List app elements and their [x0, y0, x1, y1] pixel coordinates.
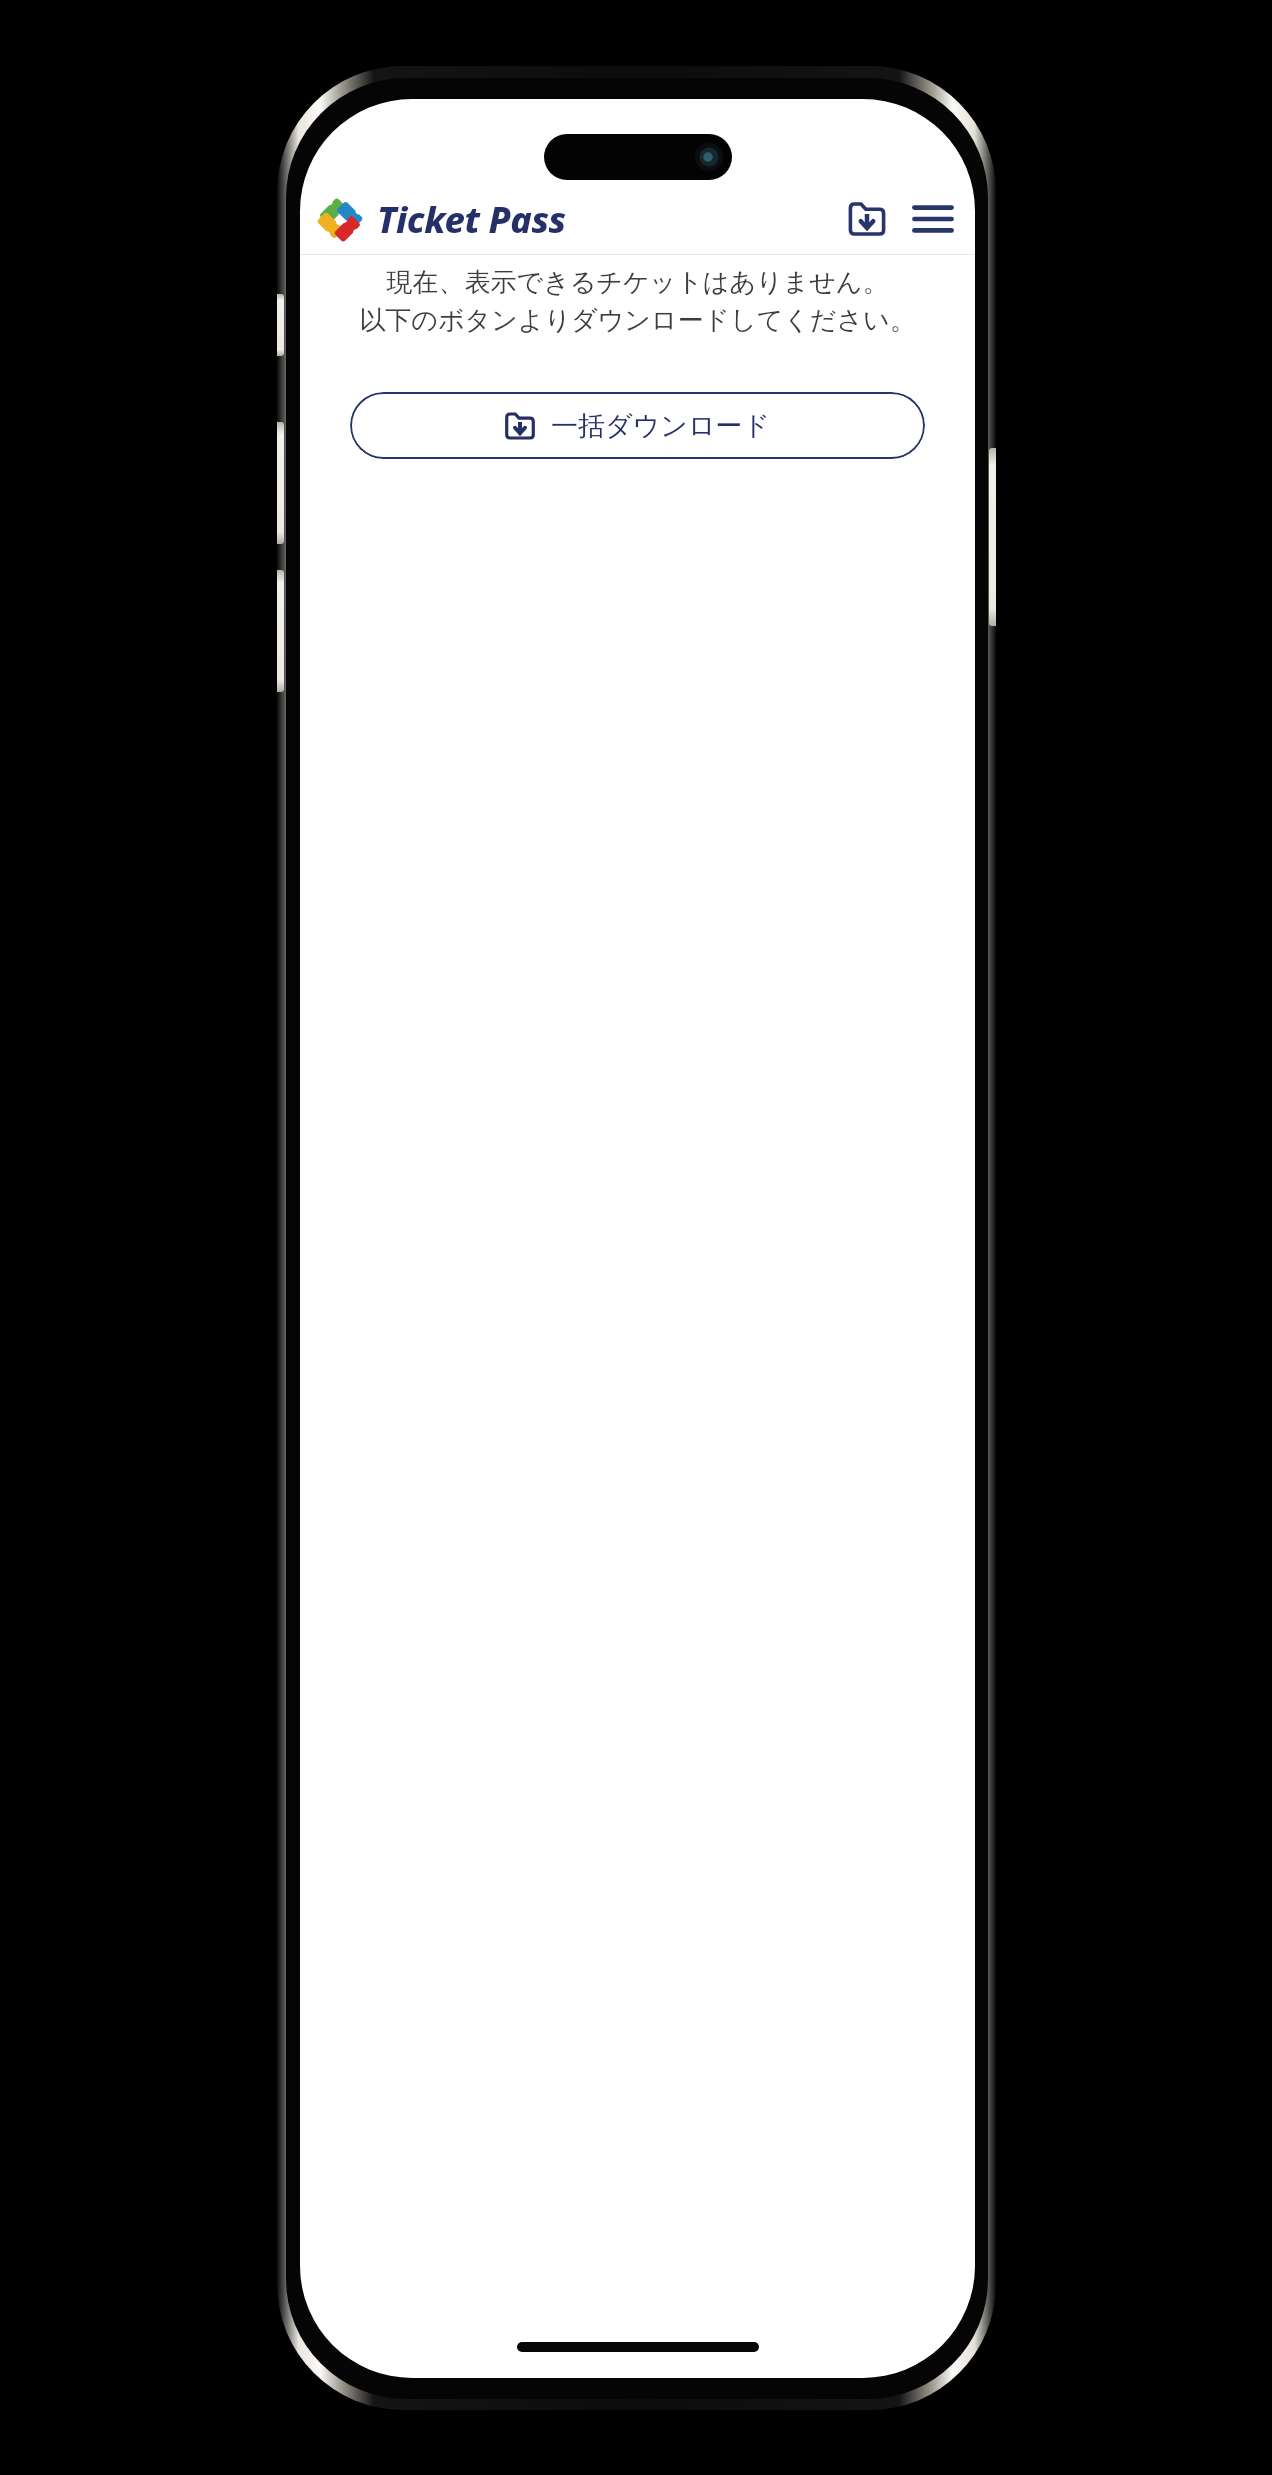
button[interactable]: Download all tickets — [841, 193, 893, 245]
button[interactable]: Ticket Pass — [314, 195, 566, 244]
staticText: 一括ダウンロード — [551, 409, 771, 443]
staticText: Ticket Pass — [377, 195, 566, 244]
button[interactable]: 一括ダウンロード — [350, 392, 925, 459]
button[interactable]: Menu — [907, 193, 959, 245]
staticText: 現在、表示できるチケットはありません。 以下のボタンよりダウンロードしてください… — [300, 266, 975, 337]
